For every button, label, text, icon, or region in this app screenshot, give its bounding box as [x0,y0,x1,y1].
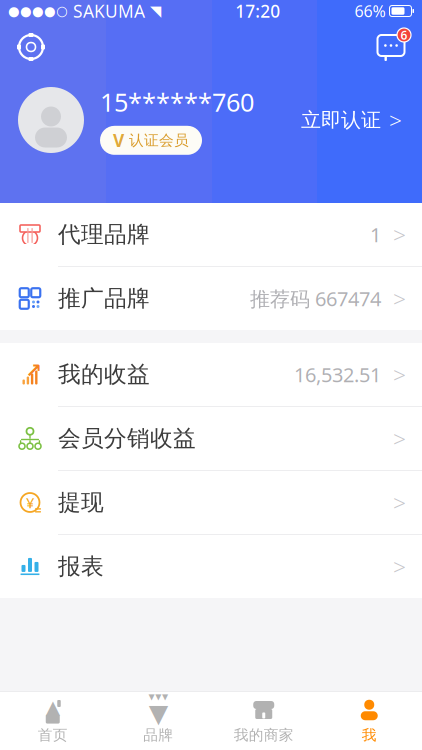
button[interactable]: 我 [316,692,422,750]
button[interactable]: ▼ [105,692,211,750]
staticText: SAKUMA [68,0,150,22]
staticText: 认证会员 [129,131,189,149]
staticText: 我的收益 [58,361,150,388]
button[interactable]: ▲ [0,692,105,750]
button[interactable]: ↗ [0,343,422,406]
button[interactable]: 立即认证 [291,98,412,142]
staticText: > [393,219,406,249]
button[interactable]: 报表 [0,535,422,598]
staticText: > [393,487,406,517]
staticText: 推广品牌 [58,285,150,312]
staticText: ▼ [162,692,168,701]
staticText: 代理品牌 [58,221,150,248]
button[interactable]: 会员分销收益 [0,407,422,470]
staticText: 16,532.51 [294,361,381,388]
staticText: 推荐码 667474 [250,285,381,312]
staticText: > [393,283,406,313]
staticText: 报表 [58,553,104,580]
staticText: 66% [354,0,385,22]
staticText: > [393,423,406,453]
staticText: 提现 [58,489,104,516]
staticText: ▼ [155,692,161,701]
staticText: > [389,105,402,135]
staticText: 我 [362,726,377,744]
staticText: 1 [370,221,381,248]
staticText: 6 [400,27,407,43]
staticText: 17:20 [235,0,280,22]
button[interactable]: 我的商家 [211,692,316,750]
staticText: 我的商家 [234,726,294,744]
staticText: 15******760 [100,85,254,119]
staticText: ↗ [25,359,42,382]
button[interactable]: 代理品牌 [0,203,422,266]
button[interactable]: 推广品牌 [0,267,422,330]
staticText: ●●●●○ [8,3,68,18]
staticText: V [113,129,124,152]
staticText: ¥ [26,493,34,512]
staticText: 会员分销收益 [58,425,196,452]
button[interactable]: ¥ [0,471,422,534]
staticText: 立即认证 [301,108,381,132]
button[interactable]: Settings [8,24,54,70]
staticText: ▲ [46,696,60,718]
staticText: ▼ [149,699,168,728]
staticText: > [393,359,406,389]
staticText: 品牌 [143,726,173,744]
staticText: ▼ [148,692,154,701]
staticText: ◥ [150,3,161,19]
staticText: > [393,551,406,581]
staticText: 首页 [38,726,68,744]
button[interactable]: Messages [368,24,414,70]
